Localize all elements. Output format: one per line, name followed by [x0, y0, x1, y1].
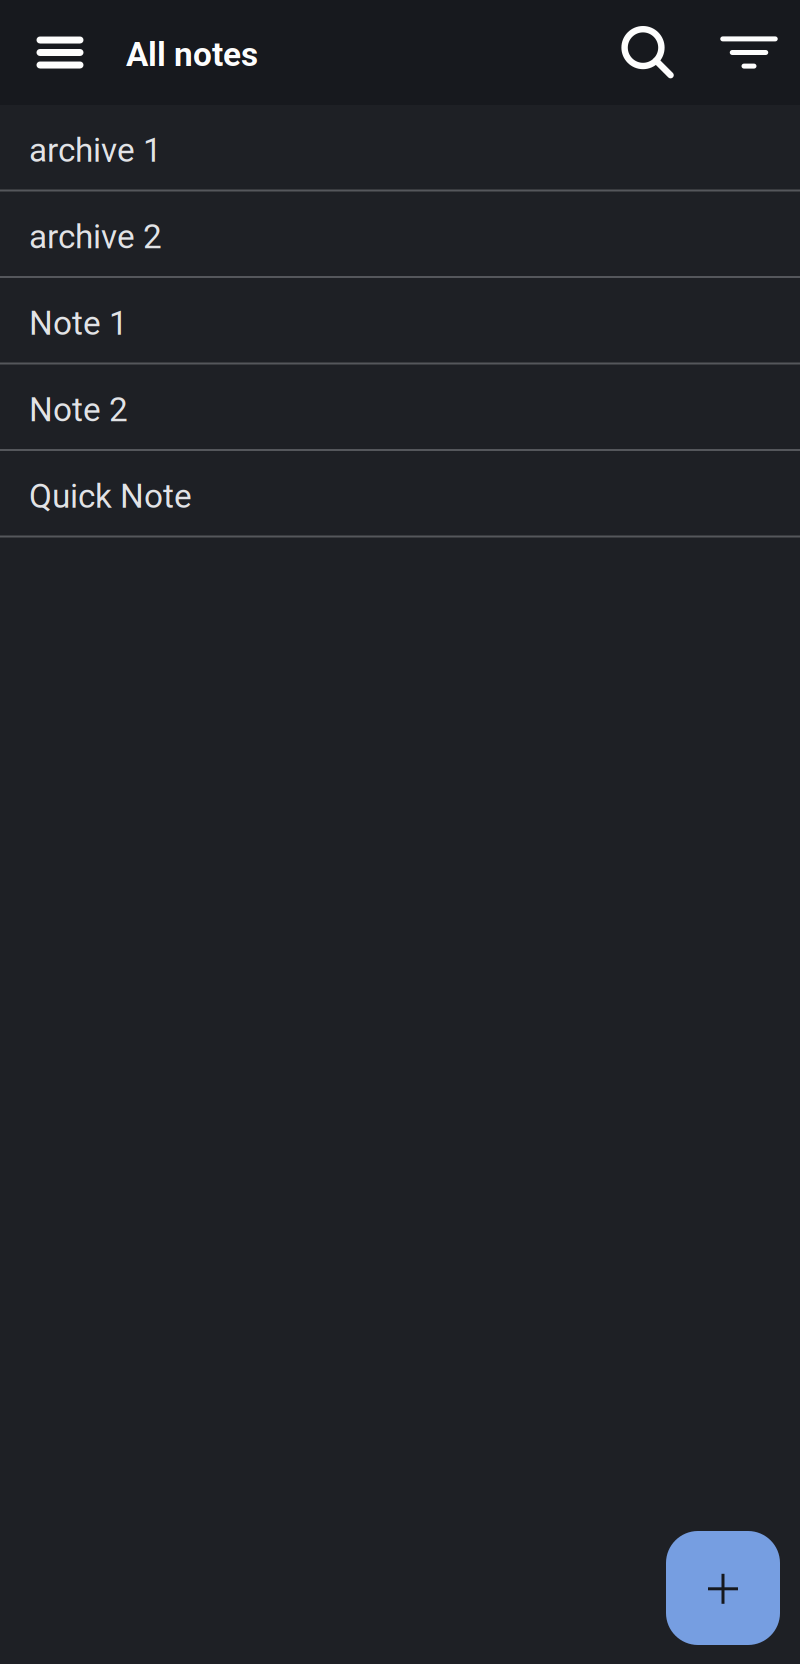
button[interactable]: Menu — [24, 13, 96, 91]
staticText: Quick Note — [29, 477, 192, 516]
button[interactable]: Quick Note — [0, 451, 800, 537]
staticText: archive 1 — [29, 131, 162, 170]
button[interactable]: archive 1 — [0, 105, 800, 191]
button[interactable]: Search — [607, 13, 685, 91]
staticText: Note 1 — [29, 304, 128, 343]
staticText: All notes — [126, 35, 258, 74]
button[interactable]: Note 1 — [0, 278, 800, 364]
button[interactable]: Sort — [709, 13, 788, 91]
button[interactable]: New note — [666, 1531, 780, 1645]
button[interactable]: archive 2 — [0, 191, 800, 278]
staticText: archive 2 — [29, 217, 162, 256]
button[interactable]: Note 2 — [0, 364, 800, 451]
staticText: Note 2 — [29, 390, 128, 429]
